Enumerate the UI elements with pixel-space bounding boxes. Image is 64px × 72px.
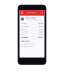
- button[interactable]: Back: [20, 10, 24, 16]
- staticText: £32.40: [38, 23, 43, 24]
- staticText: −£5.00: [38, 31, 43, 33]
- staticText: Promotion: [21, 31, 28, 33]
- staticText: Order summary: [25, 17, 37, 19]
- staticText: Total paid: [21, 37, 28, 38]
- button[interactable]: Total paid: [21, 36, 43, 39]
- staticText: VAT: [21, 34, 24, 36]
- staticText: 12 Aug 2024 · Delivered: [25, 19, 41, 21]
- staticText: London NW1 6XE: [21, 46, 33, 47]
- staticText: £1.99: [39, 25, 43, 27]
- staticText: Delivered to: [21, 40, 30, 42]
- staticText: £2.50: [39, 28, 43, 30]
- button[interactable]: VAT: [21, 33, 43, 36]
- button[interactable]: Delivery: [21, 28, 43, 30]
- staticText: Delivery: [21, 28, 27, 30]
- button[interactable]: Subtotal: [21, 22, 43, 25]
- staticText: Subtotal: [21, 23, 26, 24]
- staticText: Service fee: [21, 25, 29, 27]
- button[interactable]: Promotion: [21, 31, 43, 33]
- staticText: 221B Baker Street: [21, 43, 34, 45]
- button[interactable]: Service fee: [21, 25, 43, 28]
- button[interactable]: More: [40, 10, 43, 16]
- staticText: £35.67: [38, 37, 43, 38]
- staticText: £3.78: [39, 34, 43, 36]
- staticText: Order #4821: [27, 12, 37, 14]
